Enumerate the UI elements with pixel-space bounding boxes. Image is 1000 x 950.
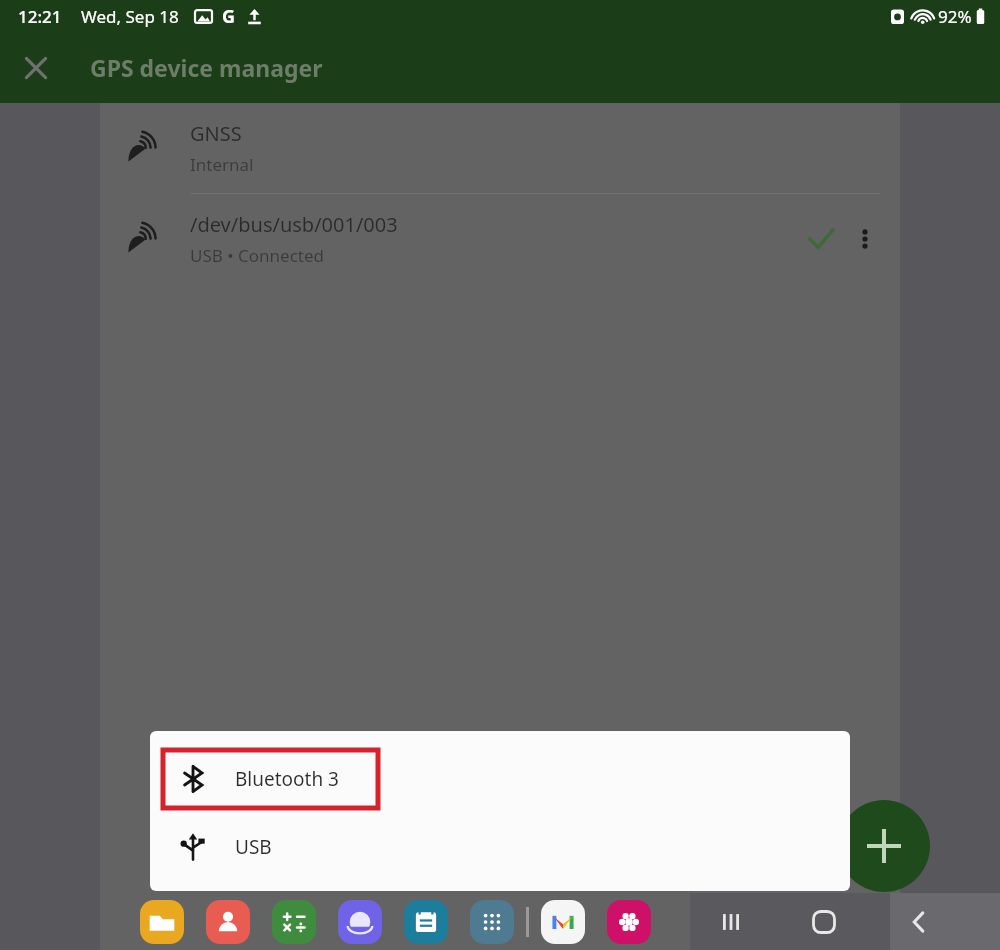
button[interactable]: App [272, 900, 316, 944]
staticText: GNSS [190, 120, 242, 147]
button[interactable]: App [140, 900, 184, 944]
button[interactable]: Add device [838, 800, 930, 892]
button[interactable]: App [541, 900, 585, 944]
button[interactable]: App [404, 900, 448, 944]
button[interactable]: Close [8, 40, 64, 96]
button[interactable]: USB [150, 821, 850, 873]
button[interactable]: App [206, 900, 250, 944]
button[interactable]: Selected [796, 214, 846, 264]
staticText: G [222, 4, 236, 29]
button[interactable]: Recents [702, 893, 760, 950]
button[interactable]: App [607, 900, 651, 944]
staticText: GPS device manager [90, 52, 323, 83]
button[interactable]: Back [890, 893, 948, 950]
staticText: 12:21 [18, 5, 62, 28]
staticText: Internal [190, 153, 254, 176]
staticText: /dev/bus/usb/001/003 [190, 211, 398, 238]
button[interactable]: Bluetooth 3 [150, 750, 850, 808]
staticText: USB [235, 834, 272, 860]
button[interactable]: App [470, 900, 514, 944]
staticText: Bluetooth 3 [235, 766, 339, 792]
button[interactable]: GNSS [0, 103, 1000, 193]
button[interactable]: Home [795, 893, 853, 950]
staticText: USB • Connected [190, 244, 325, 267]
staticText: Wed, Sep 18 [81, 5, 179, 28]
staticText: 92% [938, 5, 972, 28]
button[interactable]: /dev/bus/usb/001/003 [0, 194, 1000, 284]
button[interactable]: More options [840, 214, 890, 264]
button[interactable]: App [338, 900, 382, 944]
